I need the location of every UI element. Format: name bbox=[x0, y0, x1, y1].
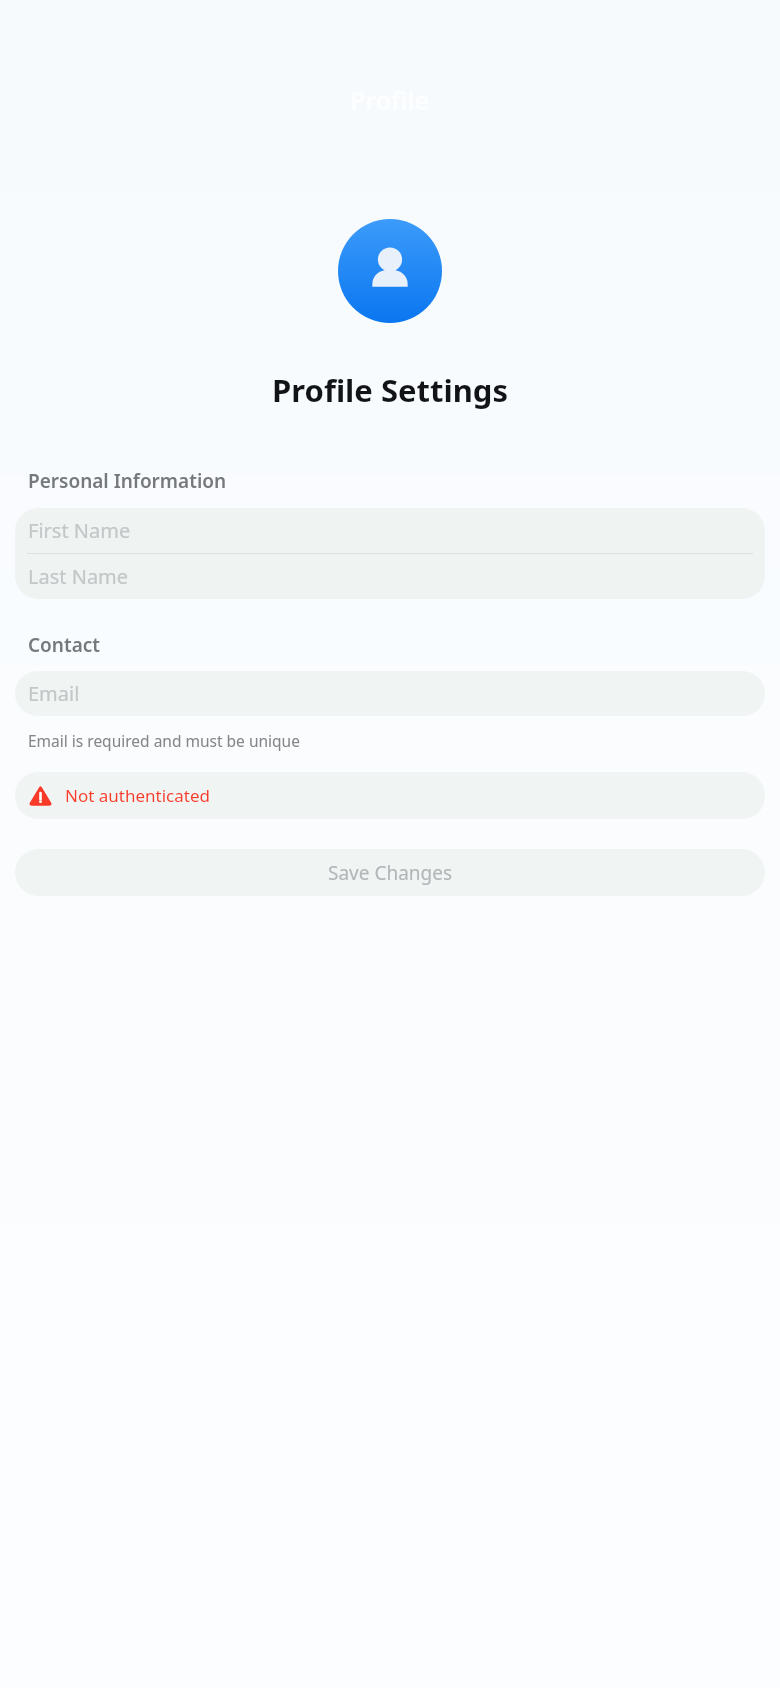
button[interactable]: Warning bbox=[15, 772, 765, 819]
staticText: Profile Settings bbox=[0, 369, 780, 411]
button[interactable]: Last Name bbox=[15, 554, 765, 599]
button[interactable]: Save Changes bbox=[15, 849, 765, 896]
staticText: First Name bbox=[28, 517, 131, 544]
button[interactable]: First Name bbox=[15, 508, 765, 553]
button[interactable]: Profile photo bbox=[338, 219, 442, 323]
button[interactable]: Email bbox=[15, 671, 765, 716]
staticText: Contact bbox=[28, 632, 101, 658]
button[interactable]: Email bbox=[15, 671, 765, 716]
other: Warning bbox=[28, 783, 53, 808]
staticText: Personal Information bbox=[28, 468, 227, 494]
staticText: Not authenticated bbox=[65, 784, 210, 807]
staticText: Save Changes bbox=[328, 860, 453, 886]
staticText: Email bbox=[28, 680, 80, 707]
staticText: Last Name bbox=[28, 563, 129, 590]
staticText: Email is required and must be unique bbox=[28, 730, 300, 751]
